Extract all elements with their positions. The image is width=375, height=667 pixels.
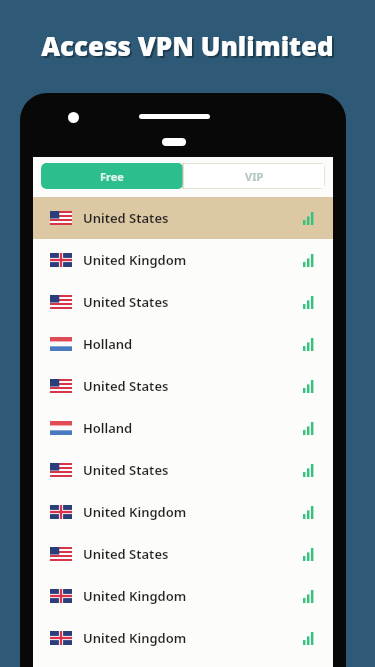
staticText: United States bbox=[83, 461, 169, 479]
button[interactable]: United States bbox=[33, 533, 333, 575]
button[interactable]: United States bbox=[33, 449, 333, 491]
staticText: United Kingdom bbox=[83, 587, 187, 605]
staticText: Holland bbox=[83, 335, 133, 353]
button[interactable]: United States bbox=[33, 197, 333, 239]
staticText: United States bbox=[83, 545, 169, 563]
button[interactable]: VIP bbox=[183, 163, 325, 189]
button[interactable]: United Kingdom bbox=[33, 491, 333, 533]
button[interactable]: United Kingdom bbox=[33, 575, 333, 617]
staticText: Access VPN Unlimited bbox=[41, 28, 334, 63]
button[interactable]: United States bbox=[33, 365, 333, 407]
button[interactable]: Free bbox=[41, 163, 183, 189]
other: Signal strength bbox=[303, 338, 316, 351]
staticText: Free bbox=[100, 169, 124, 184]
button[interactable]: United States bbox=[33, 281, 333, 323]
other: Signal strength bbox=[303, 212, 316, 225]
button[interactable]: Holland bbox=[33, 407, 333, 449]
button[interactable]: United Kingdom bbox=[33, 239, 333, 281]
staticText: United Kingdom bbox=[83, 503, 187, 521]
other: Signal strength bbox=[303, 632, 316, 645]
staticText: United Kingdom bbox=[83, 251, 187, 269]
other: Signal strength bbox=[303, 380, 316, 393]
other: Signal strength bbox=[303, 590, 316, 603]
staticText: United Kingdom bbox=[83, 629, 187, 647]
other: Signal strength bbox=[303, 548, 316, 561]
other: Signal strength bbox=[303, 254, 316, 267]
staticText: United States bbox=[83, 377, 169, 395]
staticText: VIP bbox=[245, 169, 264, 184]
staticText: United States bbox=[83, 293, 169, 311]
button[interactable]: Holland bbox=[33, 323, 333, 365]
other: Signal strength bbox=[303, 422, 316, 435]
staticText: Access VPN Unlimited bbox=[43, 30, 336, 65]
button[interactable]: United Kingdom bbox=[33, 617, 333, 659]
other: Signal strength bbox=[303, 506, 316, 519]
other: Signal strength bbox=[303, 464, 316, 477]
staticText: Holland bbox=[83, 419, 133, 437]
staticText: United States bbox=[83, 209, 169, 227]
other: Signal strength bbox=[303, 296, 316, 309]
